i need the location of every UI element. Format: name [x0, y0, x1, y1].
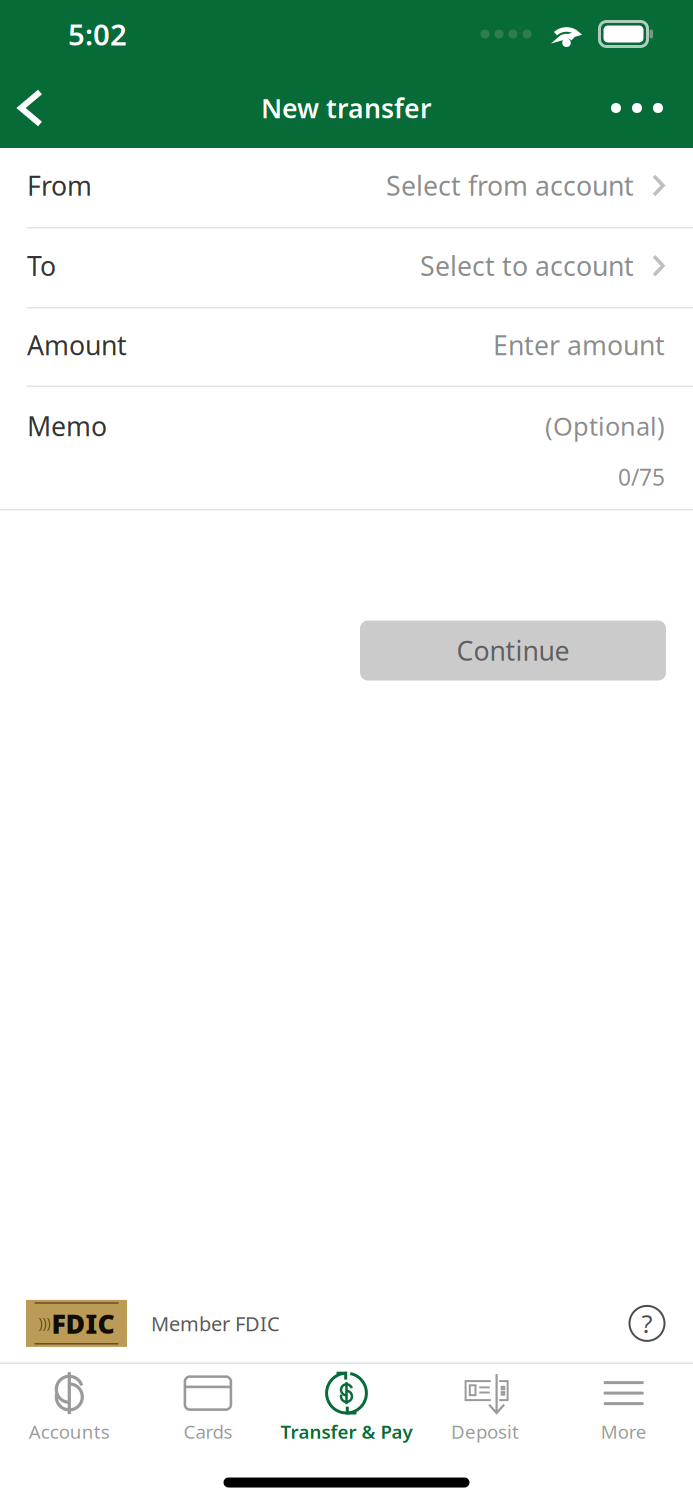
staticText: New transfer [261, 90, 432, 126]
staticText: Cards [183, 1419, 232, 1444]
staticText: 5:02 [68, 14, 127, 53]
staticText: Memo [27, 408, 107, 444]
staticText: FDIC [51, 1306, 114, 1341]
staticText: Accounts [29, 1419, 110, 1444]
button[interactable]: Accounts [0, 1370, 139, 1444]
button[interactable]: Cards [139, 1370, 277, 1444]
button[interactable]: More options [581, 68, 693, 148]
button[interactable]: Continue [360, 620, 666, 680]
staticText: More [601, 1419, 647, 1444]
staticText: Select from account [386, 168, 634, 203]
button[interactable]: To [0, 228, 693, 307]
button[interactable]: Deposit [416, 1370, 554, 1444]
button[interactable]: Transfer & Pay [277, 1370, 416, 1444]
staticText: From [27, 168, 92, 203]
staticText: Deposit [451, 1419, 519, 1444]
staticText: Continue [456, 633, 569, 668]
staticText: Enter amount [493, 327, 665, 363]
button[interactable]: From [0, 148, 693, 227]
staticText: Member FDIC [151, 1310, 280, 1337]
staticText: ? [641, 1307, 652, 1340]
staticText: Transfer & Pay [280, 1419, 412, 1444]
button[interactable]: Amount [0, 308, 693, 385]
staticText: 0/75 [618, 462, 665, 492]
button[interactable]: Back [0, 68, 70, 148]
staticText: Select to account [420, 248, 634, 283]
staticText: ))) [38, 1314, 50, 1333]
button[interactable]: More [554, 1370, 693, 1444]
staticText: To [27, 248, 56, 283]
button[interactable]: Memo [0, 387, 693, 509]
button[interactable]: Help [625, 1301, 669, 1345]
staticText: Amount [27, 327, 127, 363]
staticText: (Optional) [545, 409, 665, 443]
